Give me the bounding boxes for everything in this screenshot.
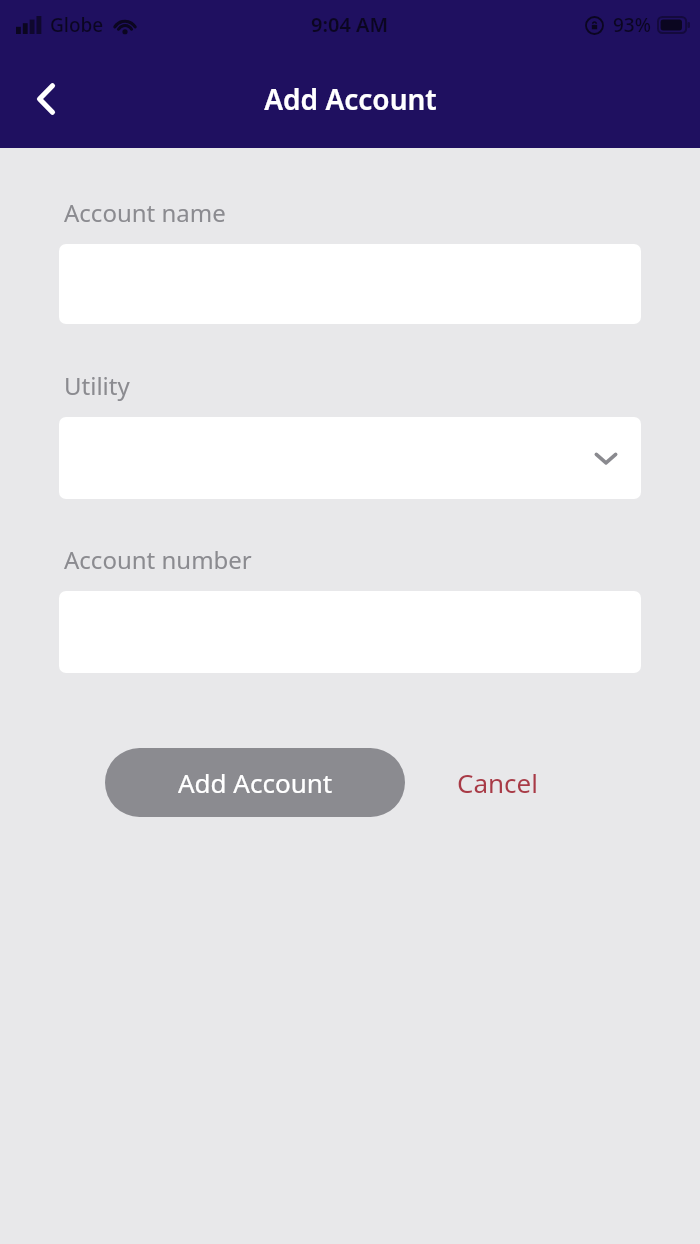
button[interactable]: Back [14, 67, 78, 131]
staticText: 93% [613, 12, 651, 38]
button[interactable]: Utility [59, 417, 641, 499]
staticText: Account name [64, 196, 226, 229]
staticText: Account number [64, 543, 252, 576]
staticText: Add Account [178, 765, 333, 800]
staticText: Cancel [457, 765, 538, 800]
staticText: Globe [50, 12, 104, 38]
staticText: Add Account [264, 80, 437, 118]
staticText: Utility [64, 369, 130, 402]
button[interactable]: Cancel [430, 748, 564, 817]
staticText: 9:04 AM [311, 11, 389, 38]
button[interactable]: Add Account [105, 748, 405, 817]
